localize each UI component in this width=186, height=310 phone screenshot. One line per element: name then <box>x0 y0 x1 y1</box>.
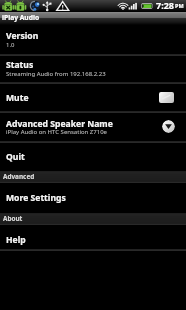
button[interactable]: Choose speaker <box>162 120 175 133</box>
staticText: iPlay Audio on HTC Sensation Z710e <box>6 128 107 136</box>
staticText: Status <box>6 59 34 71</box>
button[interactable]: Version <box>0 25 186 54</box>
staticText: Help <box>6 234 26 246</box>
staticText: More Settings <box>6 192 66 204</box>
staticText: 1.0 <box>6 41 15 49</box>
staticText: Mute <box>6 92 29 104</box>
staticText: About <box>3 214 23 223</box>
staticText: PM <box>175 2 184 9</box>
button[interactable]: More Settings <box>0 183 186 213</box>
button[interactable]: Mute <box>0 84 186 111</box>
staticText: iPlay Audio <box>2 13 40 22</box>
staticText: Quit <box>6 151 25 163</box>
button[interactable]: Help <box>0 225 186 249</box>
staticText: Advanced Speaker Name <box>6 118 113 130</box>
button[interactable]: Mute checkbox <box>159 92 174 103</box>
staticText: Version <box>6 30 39 42</box>
staticText: Streaming Audio from 192.168.2.23 <box>6 70 106 78</box>
button[interactable]: Quit <box>0 143 186 171</box>
button[interactable]: Advanced Speaker Name <box>0 113 186 141</box>
staticText: 7:28 <box>156 0 174 11</box>
button[interactable]: Status <box>0 56 186 82</box>
staticText: Advanced <box>3 172 35 181</box>
